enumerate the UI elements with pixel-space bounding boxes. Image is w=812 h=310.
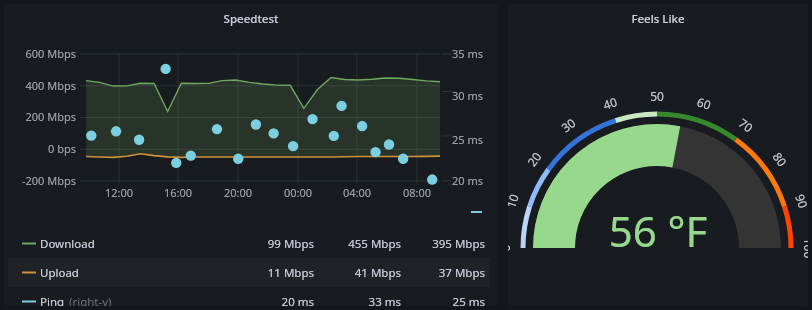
- staticText: 04:00: [327, 185, 387, 200]
- staticText: 20 ms: [224, 294, 314, 306]
- staticText: 80: [765, 142, 795, 176]
- staticText: 20 ms: [452, 173, 498, 188]
- staticText: 30 ms: [452, 88, 498, 103]
- staticText: 25 ms: [395, 294, 485, 306]
- other: Feels Like gauge, 56 degrees Fahrenheit: [508, 4, 808, 306]
- staticText: 30: [551, 110, 585, 140]
- staticText: 41 Mbps: [311, 265, 401, 281]
- staticText: 600 Mbps: [4, 46, 76, 61]
- staticText: 20:00: [208, 185, 268, 200]
- staticText: 40: [593, 91, 627, 115]
- staticText: -200 Mbps: [4, 173, 76, 188]
- staticText: 90: [790, 184, 808, 218]
- staticText: 08:00: [387, 185, 447, 200]
- staticText: 0 bps: [4, 141, 76, 156]
- staticText: 395 Mbps: [395, 236, 485, 252]
- staticText: 100: [801, 233, 808, 263]
- staticText: 33 ms: [311, 294, 401, 306]
- staticText: 56 °F: [508, 202, 808, 259]
- staticText: 25 ms: [452, 132, 498, 147]
- staticText: Speedtest: [4, 11, 498, 27]
- button[interactable]: Feels Like: [508, 4, 808, 306]
- staticText: 200 Mbps: [4, 109, 76, 124]
- staticText: 20: [519, 142, 549, 176]
- staticText: 70: [729, 110, 763, 140]
- staticText: 455 Mbps: [311, 236, 401, 252]
- staticText: 400 Mbps: [4, 78, 76, 93]
- staticText: 99 Mbps: [224, 236, 314, 252]
- staticText: 16:00: [148, 185, 208, 200]
- staticText: Feels Like: [508, 11, 808, 27]
- staticText: 50: [642, 88, 672, 104]
- staticText: Upload: [40, 265, 79, 281]
- staticText: Ping: [40, 294, 65, 306]
- staticText: 0: [508, 233, 513, 263]
- staticText: 12:00: [89, 185, 149, 200]
- button[interactable]: Download: [8, 229, 490, 258]
- staticText: 60: [687, 91, 721, 115]
- staticText: 35 ms: [452, 46, 498, 61]
- staticText: (right-y): [69, 294, 112, 306]
- staticText: 00:00: [268, 185, 328, 200]
- staticText: 10: [508, 184, 524, 218]
- button[interactable]: Speedtest: [4, 4, 498, 306]
- button[interactable]: Ping: [8, 287, 490, 306]
- staticText: 37 Mbps: [395, 265, 485, 281]
- staticText: 11 Mbps: [224, 265, 314, 281]
- staticText: Download: [40, 236, 95, 252]
- button[interactable]: Upload: [8, 258, 490, 287]
